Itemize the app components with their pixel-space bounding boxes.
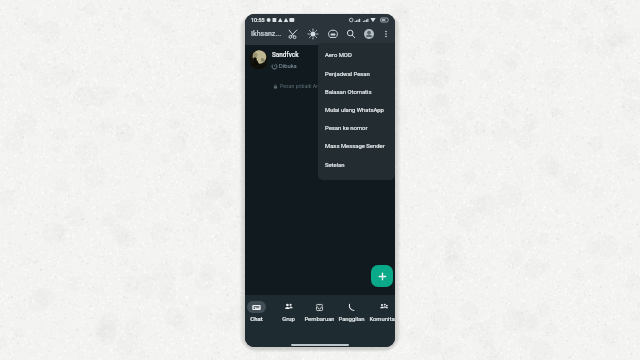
button[interactable]: Status [324, 25, 341, 42]
staticText: Sandfvck [272, 51, 299, 59]
staticText: Balasan Otomatis [325, 89, 372, 96]
button[interactable]: Setelan [318, 156, 395, 174]
button[interactable]: Penjadwal Pesan [318, 65, 395, 83]
button[interactable]: Pembaruan [304, 295, 334, 329]
staticText: 10:55 [251, 17, 265, 23]
staticText: Grup [282, 316, 295, 323]
button[interactable]: New chat [371, 265, 393, 287]
staticText: Pesan pribadi Anda terenkripsi [280, 83, 351, 89]
button[interactable]: Mass Message Sender [318, 137, 395, 155]
button[interactable]: More options [379, 27, 393, 41]
button[interactable]: Chat [245, 295, 271, 329]
staticText: Pesan ke nomor [325, 125, 368, 132]
staticText: Setelan [325, 162, 345, 169]
button[interactable]: Aero MOD [318, 46, 395, 64]
button[interactable]: Panggilan [336, 295, 366, 329]
button[interactable]: Balasan Otomatis [318, 83, 395, 101]
staticText: Mass Message Sender [325, 143, 385, 150]
button[interactable]: Mulai ulang WhatsApp [318, 101, 395, 119]
staticText: Ikhsanz... [251, 30, 282, 38]
button[interactable]: Sandfvck [245, 45, 395, 75]
staticText: Mulai ulang WhatsApp [325, 107, 384, 114]
button[interactable]: Profile [360, 25, 377, 42]
button[interactable]: Grup [273, 295, 303, 329]
button[interactable]: Aero MOD [284, 25, 301, 42]
staticText: Panggilan [338, 316, 365, 323]
button[interactable]: Search [342, 25, 359, 42]
staticText: Chat [250, 316, 263, 323]
staticText: Komunitas [369, 316, 395, 323]
button[interactable]: Brightness [304, 25, 321, 42]
button[interactable]: Komunitas [368, 295, 395, 329]
staticText: Dibuka [279, 63, 297, 70]
staticText: Penjadwal Pesan [325, 71, 370, 78]
staticText: Pembaruan [304, 316, 334, 323]
staticText: Aero MOD [325, 52, 352, 59]
button[interactable]: Pesan ke nomor [318, 119, 395, 137]
